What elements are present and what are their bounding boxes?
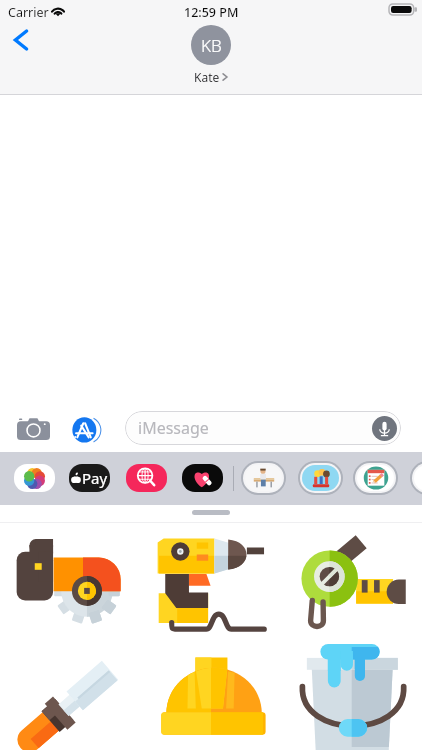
button[interactable]: Sticker pack [414,465,422,491]
staticText: KB [201,34,222,57]
button[interactable]: Camera [14,411,52,444]
button[interactable]: Hard hat [140,643,281,750]
button[interactable]: Tape measure [281,523,422,643]
button[interactable]: Circular saw [0,523,140,643]
button[interactable]: Apple Pay [69,464,110,492]
button[interactable]: Back [0,19,42,61]
button[interactable]: Dictate [371,415,397,441]
staticText: Kate [194,69,220,85]
button[interactable]: Sticker pack [357,465,394,491]
button[interactable]: iMessage [125,411,401,445]
button[interactable]: Translate [126,464,167,492]
button[interactable]: Sticker pack [302,465,339,491]
staticText: 12:59 PM [184,4,239,21]
button[interactable]: Photos [14,464,55,492]
button[interactable]: App Store [70,414,102,446]
staticText: Carrier [8,4,49,21]
staticText: Pay [82,468,108,488]
button[interactable]: Digital Touch [182,464,223,492]
button[interactable]: Paint bucket [281,643,422,750]
button[interactable]: Screwdriver [0,643,140,750]
button[interactable]: KB [191,25,231,85]
staticText: iMessage [138,417,209,439]
button[interactable]: Drill [140,523,281,643]
button[interactable]: Sticker pack [245,465,282,491]
